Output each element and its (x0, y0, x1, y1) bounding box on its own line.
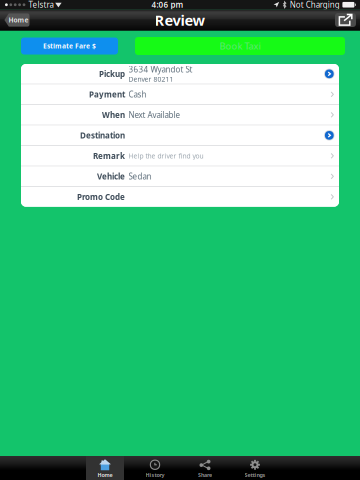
staticText: 3634 Wyandot St (128, 64, 192, 75)
button[interactable]: Estimate Fare $ (21, 37, 118, 54)
staticText: Vehicle (97, 171, 125, 182)
staticText: Book Taxi (219, 40, 260, 52)
staticText: Help the driver find you (128, 151, 203, 160)
button[interactable]: Home (4, 13, 30, 27)
button[interactable]: History (136, 456, 174, 480)
staticText: Promo Code (77, 191, 125, 202)
button[interactable]: Promo Code (21, 187, 339, 207)
staticText: Telstra (29, 0, 54, 10)
button[interactable]: Payment (21, 84, 339, 104)
staticText: Next Available (128, 109, 180, 120)
button[interactable]: Vehicle (21, 166, 339, 186)
button[interactable]: Home (86, 456, 124, 480)
staticText: Review (154, 10, 205, 30)
staticText: History (145, 471, 164, 478)
staticText: Home (97, 471, 112, 478)
staticText: Remark (93, 150, 125, 161)
staticText: Not Charging (290, 0, 340, 10)
staticText: Destination (80, 130, 125, 141)
staticText: Share (198, 471, 212, 478)
staticText: Cash (128, 89, 146, 100)
button[interactable]: Settings (236, 456, 274, 480)
button[interactable]: When (21, 105, 339, 125)
button[interactable]: Share (186, 456, 224, 480)
button[interactable]: Remark (21, 146, 339, 166)
staticText: Denver 80211 (128, 75, 173, 84)
button[interactable]: Book Taxi (135, 37, 345, 55)
staticText: Pickup (99, 68, 125, 79)
staticText: Estimate Fare $ (43, 42, 96, 50)
staticText: Sedan (128, 171, 151, 182)
button[interactable]: Destination (21, 125, 339, 145)
button[interactable]: Pickup (21, 64, 339, 84)
staticText: Home (8, 16, 28, 24)
staticText: When (102, 109, 125, 120)
staticText: Payment (89, 89, 125, 100)
staticText: Settings (244, 471, 265, 478)
staticText: 4:06 pm (152, 0, 184, 10)
button[interactable]: Share (335, 13, 356, 27)
